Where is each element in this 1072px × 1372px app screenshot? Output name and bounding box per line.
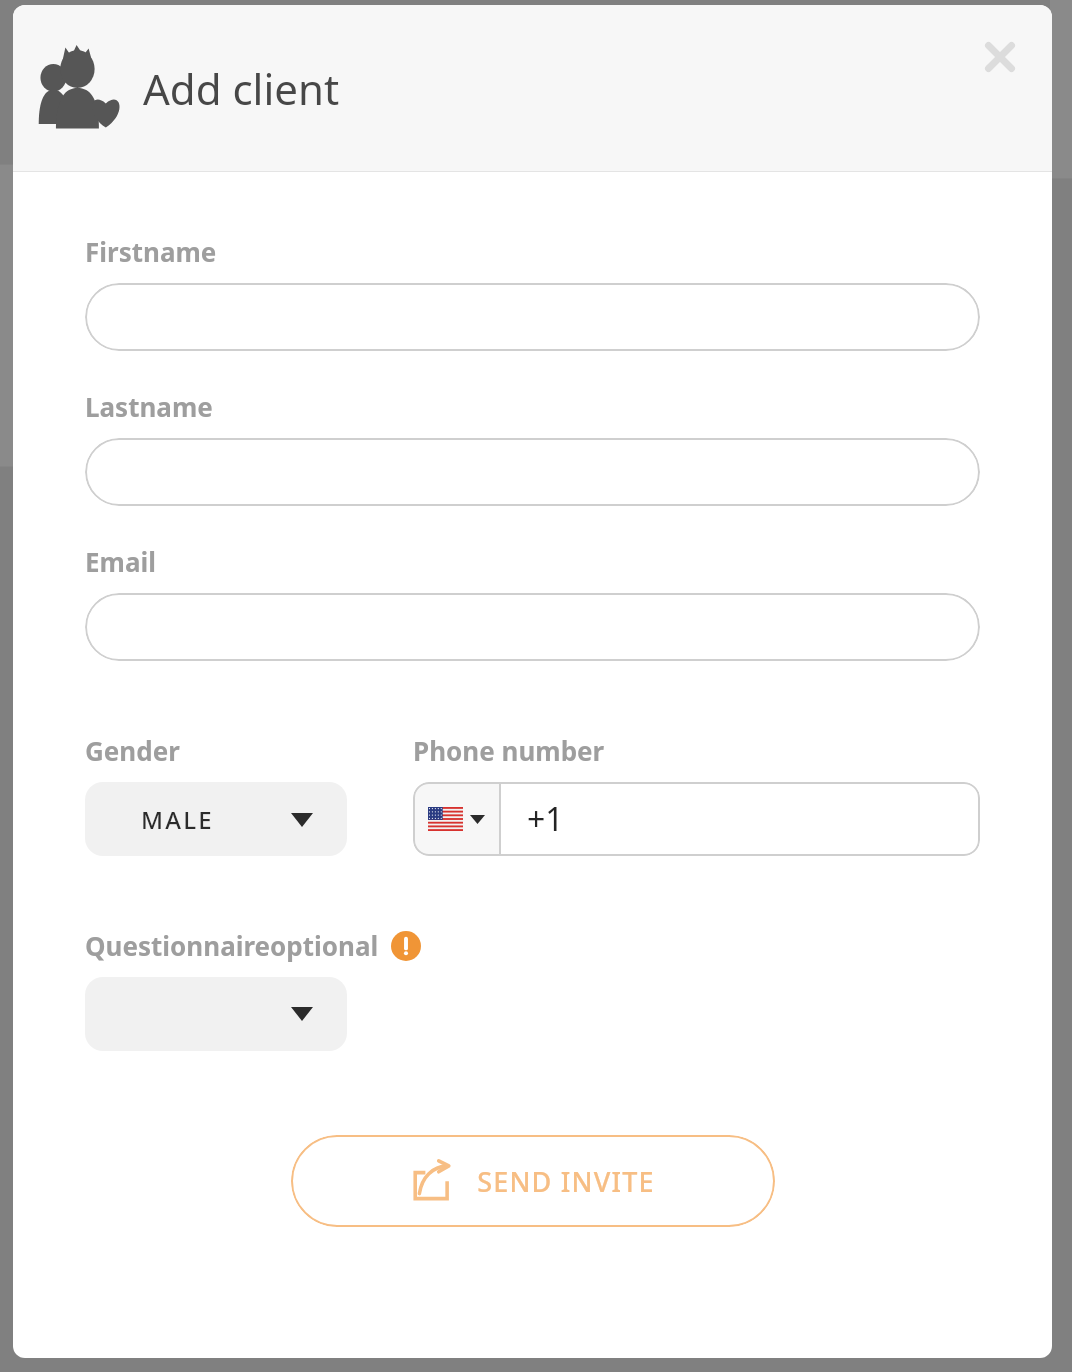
button[interactable]: Close (976, 33, 1024, 81)
button[interactable]: SEND INVITE (291, 1135, 775, 1227)
staticText: Email (85, 544, 157, 579)
staticText: Lastname (85, 389, 213, 424)
button[interactable]: MALE (85, 782, 347, 856)
staticText: SEND INVITE (477, 1163, 655, 1200)
button[interactable]: Text input (85, 283, 980, 351)
staticText: Gender (85, 733, 180, 768)
staticText: Add client (143, 60, 340, 117)
staticText: Questionnaireoptional (85, 928, 379, 963)
button[interactable]: Text input (85, 438, 980, 506)
staticText: MALE (141, 803, 214, 836)
staticText: Firstname (85, 234, 217, 269)
staticText: Phone number (413, 733, 605, 768)
staticText: +1 (527, 797, 564, 841)
button[interactable]: Phone number input (501, 782, 980, 856)
button[interactable]: Select country code (413, 782, 499, 856)
button[interactable]: Text input (85, 593, 980, 661)
button[interactable]: Select questionnaire (85, 977, 347, 1051)
